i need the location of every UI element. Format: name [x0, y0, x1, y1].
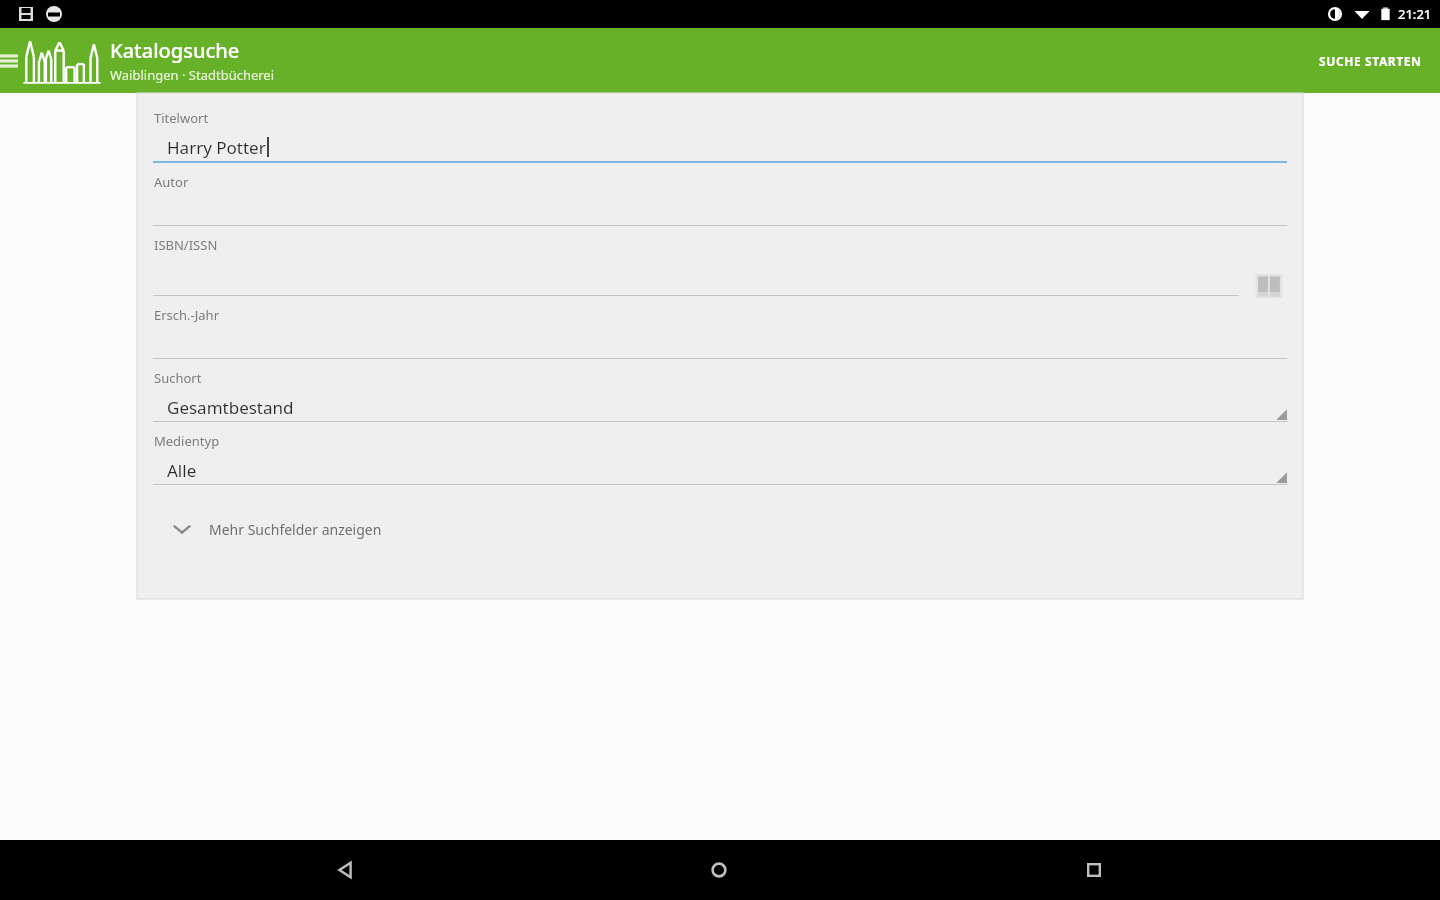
staticText: Gesamtbestand [167, 396, 294, 419]
button[interactable]: Mehr Suchfelder anzeigen [153, 507, 1287, 551]
staticText: Medientyp [154, 432, 220, 450]
staticText: 21:21 [1398, 5, 1432, 23]
button[interactable]: Barcode scannen [1251, 268, 1287, 304]
button[interactable]: Navigation öffnen [0, 28, 18, 93]
button[interactable]: Übersicht [1065, 841, 1123, 899]
staticText: SUCHE STARTEN [1319, 53, 1422, 69]
button[interactable]: Ersch.-Jahr [137, 306, 1303, 369]
button[interactable]: Autor [137, 173, 1303, 236]
button[interactable]: Bibliothek [18, 28, 106, 93]
staticText: Alle [167, 459, 197, 482]
staticText: ISBN/ISSN [154, 236, 218, 254]
button[interactable]: ISBN/ISSN [137, 236, 1303, 306]
staticText: Mehr Suchfelder anzeigen [209, 520, 382, 539]
button[interactable]: Titelwort [137, 109, 1303, 173]
staticText: Titelwort [154, 109, 209, 127]
staticText: Autor [154, 173, 189, 191]
staticText: Suchort [154, 369, 202, 387]
staticText: Katalogsuche [110, 37, 240, 64]
staticText: Ersch.-Jahr [154, 306, 220, 324]
button[interactable]: Suchort [137, 369, 1303, 432]
button[interactable]: Startbildschirm [690, 841, 748, 899]
staticText: Harry Potter [167, 136, 266, 159]
button[interactable]: Zurück [316, 841, 374, 899]
button[interactable]: Medientyp [137, 432, 1303, 495]
staticText: Waiblingen · Stadtbücherei [110, 66, 275, 84]
button[interactable]: SUCHE STARTEN [1301, 28, 1440, 93]
